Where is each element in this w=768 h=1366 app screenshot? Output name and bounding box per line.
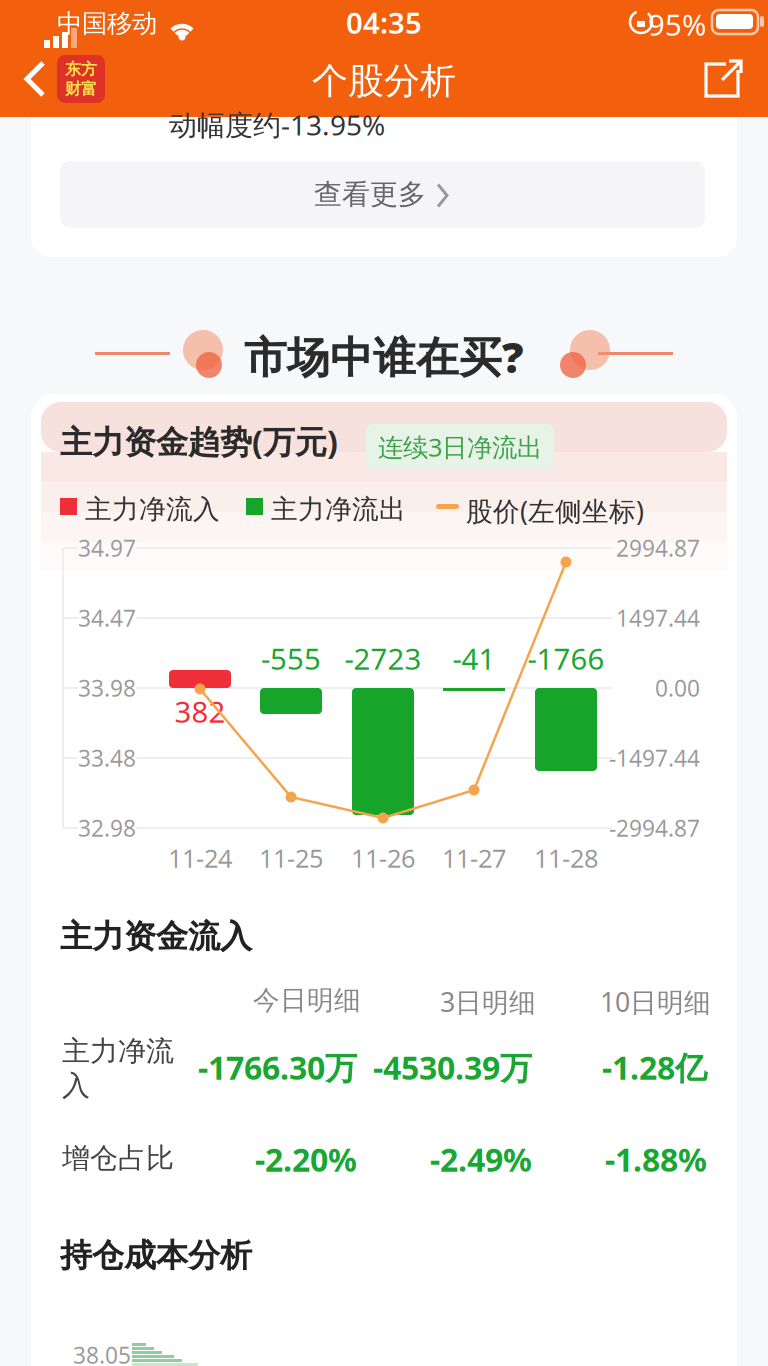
staticText: 主力资金趋势(万元): [60, 420, 338, 462]
staticText: 04:35: [346, 3, 422, 42]
staticText: -1.28亿: [602, 1046, 707, 1088]
staticText: -2.49%: [430, 1138, 532, 1180]
staticText: 11-27: [442, 841, 506, 875]
staticText: 个股分析: [312, 59, 456, 103]
staticText: -2723: [344, 639, 421, 678]
staticText: -1497.44: [609, 743, 700, 773]
staticText: 2994.87: [616, 533, 700, 563]
staticText: 东方: [65, 59, 97, 79]
staticText: 主力净流出: [271, 493, 406, 526]
staticText: 主力净流 入: [62, 1034, 174, 1103]
staticText: 查看更多: [314, 177, 426, 212]
button[interactable]: 东方财富: [57, 55, 105, 103]
staticText: -41: [452, 639, 495, 678]
staticText: 32.98: [78, 813, 136, 843]
staticText: -1766: [527, 639, 604, 678]
staticText: 动幅度约-13.95%: [169, 106, 385, 143]
staticText: -1766.30万: [198, 1046, 357, 1088]
staticText: 38.05: [73, 1340, 131, 1366]
staticText: 11-25: [259, 841, 323, 875]
button[interactable]: 返回: [24, 60, 50, 98]
staticText: -555: [261, 639, 321, 678]
staticText: -2.20%: [255, 1138, 357, 1180]
staticText: 连续3日净流出: [378, 430, 542, 464]
staticText: 11-28: [534, 841, 598, 875]
staticText: 34.47: [78, 603, 136, 633]
staticText: 3日明细: [440, 984, 536, 1019]
staticText: 增仓占比: [62, 1141, 174, 1175]
staticText: 持仓成本分析: [60, 1236, 252, 1275]
staticText: 33.98: [78, 673, 136, 703]
staticText: 主力净流入: [85, 493, 220, 526]
staticText: 34.97: [78, 533, 136, 563]
button[interactable]: 分享: [702, 56, 746, 100]
staticText: 10日明细: [600, 984, 711, 1019]
staticText: 95%: [648, 5, 706, 44]
staticText: 主力资金流入: [60, 917, 252, 956]
staticText: 股价(左侧坐标): [466, 493, 644, 528]
staticText: 1497.44: [616, 603, 700, 633]
staticText: 今日明细: [253, 984, 361, 1017]
staticText: -4530.39万: [373, 1046, 532, 1088]
staticText: 382: [174, 692, 225, 731]
staticText: -2994.87: [609, 813, 700, 843]
staticText: 中国移动: [57, 8, 157, 39]
staticText: 11-24: [168, 841, 232, 875]
staticText: 市场中谁在买?: [244, 328, 524, 385]
button[interactable]: 查看更多: [60, 161, 705, 228]
staticText: -1.88%: [605, 1138, 707, 1180]
staticText: 11-26: [351, 841, 415, 875]
staticText: 0.00: [655, 673, 700, 703]
staticText: 33.48: [78, 743, 136, 773]
staticText: 财富: [65, 79, 97, 99]
